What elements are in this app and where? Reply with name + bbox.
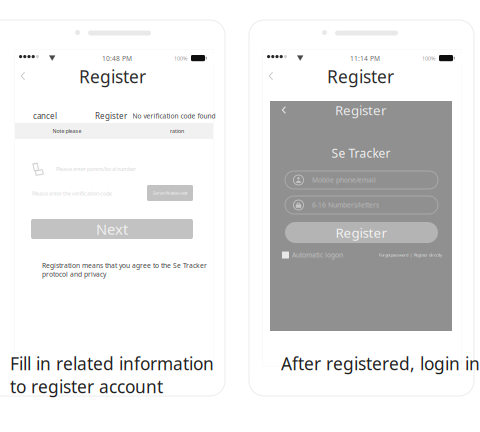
staticText: Note please (52, 127, 81, 135)
staticText: Please enter the verification code (32, 190, 112, 197)
button[interactable]: Get verification code (147, 185, 193, 201)
button[interactable]: Forgot password (379, 252, 408, 258)
staticText: 100% (422, 55, 435, 62)
staticText: ration (170, 127, 184, 135)
staticText: 10:48 PM (102, 54, 132, 63)
button[interactable]: Automatic logon (282, 249, 362, 261)
button[interactable]: Register (285, 222, 438, 243)
staticText: Register (327, 65, 394, 88)
staticText: Mobile phone/email (312, 176, 376, 184)
staticText: Register directly (414, 252, 442, 258)
staticText: cancel (33, 111, 57, 121)
staticText: Get verification code (152, 190, 187, 196)
staticText: No verification code found (132, 112, 215, 120)
button[interactable]: Back (265, 70, 277, 82)
staticText: Automatic logon (292, 251, 343, 259)
button[interactable]: Register directly (414, 252, 442, 258)
staticText: After registered, login in (281, 352, 480, 375)
staticText: | (410, 252, 412, 258)
staticText: 100% (174, 55, 187, 62)
button[interactable]: Register (95, 110, 127, 122)
staticText: Registration means that you agree to the… (42, 261, 207, 279)
button[interactable]: Next (31, 219, 193, 239)
staticText: Forgot password (379, 252, 408, 258)
staticText: Next (96, 219, 128, 239)
button[interactable]: cancel (33, 110, 63, 122)
staticText: 11:14 PM (350, 54, 380, 63)
staticText: Register (335, 101, 387, 119)
staticText: Se Tracker (331, 145, 390, 161)
staticText: 6-16 Numbers/letters (312, 201, 379, 209)
staticText: Register (95, 111, 127, 121)
staticText: Register (335, 224, 387, 241)
staticText: Please enter parent/local number (56, 165, 136, 173)
staticText: Register (79, 65, 146, 88)
button[interactable]: Back (278, 103, 290, 117)
button[interactable]: Back (17, 70, 29, 82)
staticText: Fill in related information to register … (10, 352, 214, 398)
